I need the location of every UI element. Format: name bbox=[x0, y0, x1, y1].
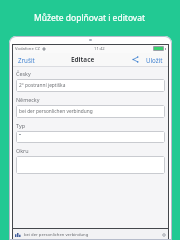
button[interactable] bbox=[16, 131, 165, 143]
button[interactable]: Uložit bbox=[144, 55, 165, 65]
button[interactable]: bei der personlichen verbindung bbox=[16, 105, 165, 118]
button[interactable]: Zrušit bbox=[16, 55, 37, 65]
button[interactable]: 2° postranní jeptiška bbox=[16, 79, 165, 92]
staticText: Okru bbox=[16, 147, 29, 154]
staticText: 11:42 bbox=[94, 46, 105, 52]
staticText: 2° postranní jeptiška bbox=[19, 82, 66, 89]
button[interactable] bbox=[16, 156, 165, 174]
staticText: Německy bbox=[16, 96, 40, 103]
staticText: Zrušit bbox=[18, 56, 35, 64]
staticText: Vodafone CZ bbox=[15, 46, 40, 52]
button[interactable]: Nastavení bbox=[162, 233, 166, 237]
button[interactable]: Graf bbox=[15, 232, 21, 237]
staticText: Typ bbox=[16, 122, 25, 129]
staticText: Můžete doplňovat i editovat bbox=[34, 12, 146, 24]
staticText: Česky bbox=[16, 70, 31, 77]
staticText: Uložit bbox=[146, 56, 163, 64]
staticText: bei der personlichen verbindung bbox=[19, 108, 93, 115]
staticText: bei der personlichen verbindung bbox=[24, 232, 89, 238]
staticText: Editace bbox=[71, 55, 95, 64]
button[interactable]: Sdílet bbox=[130, 54, 141, 65]
